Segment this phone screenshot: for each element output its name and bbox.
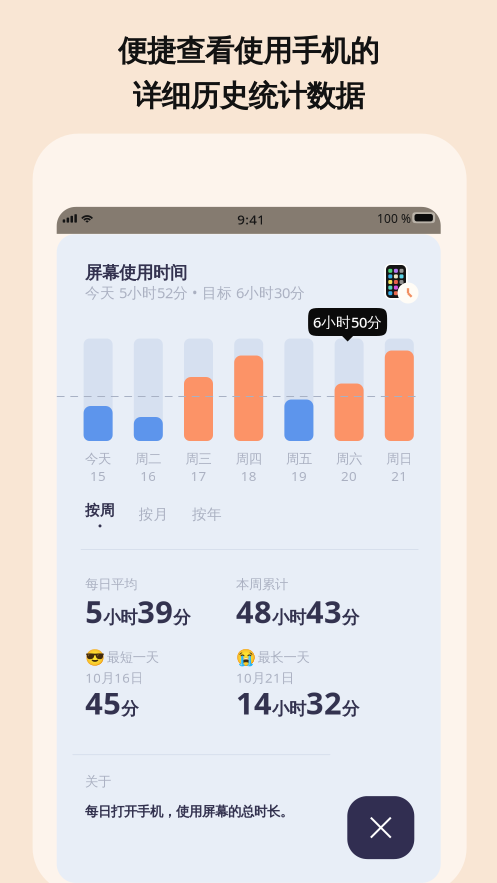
staticText: 按月 — [138, 505, 168, 523]
staticText: 32 — [306, 682, 342, 723]
staticText: 21 — [391, 467, 407, 485]
staticText: 10月16日 — [85, 669, 143, 686]
staticText: 周四 — [236, 450, 262, 467]
staticText: 便捷查看使用手机的 — [118, 33, 379, 69]
staticText: 最短一天 — [107, 649, 159, 665]
staticText: 关于 — [85, 773, 111, 790]
staticText: 周五 — [286, 450, 312, 467]
staticText: 😎 — [85, 648, 105, 666]
staticText: 最长一天 — [257, 649, 309, 665]
staticText: 10月21日 — [236, 669, 294, 686]
staticText: 周二 — [135, 450, 161, 467]
staticText: 周日 — [386, 450, 412, 467]
button[interactable]: 按周 — [85, 501, 138, 527]
staticText: 今天 — [85, 450, 111, 467]
button[interactable]: 按月 — [138, 505, 192, 523]
staticText: 每日平均 — [85, 576, 137, 593]
staticText: 周六 — [336, 450, 362, 467]
button[interactable]: 按年 — [192, 505, 245, 523]
staticText: 48 — [236, 591, 272, 632]
staticText: 每日打开手机，使用屏幕的总时长。 — [85, 803, 293, 820]
staticText: 今天 5小时52分 • 目标 6小时30分 — [85, 283, 305, 302]
staticText: 小时 — [272, 607, 306, 628]
staticText: 16 — [140, 467, 156, 485]
staticText: 本周累计 — [236, 576, 288, 593]
staticText: 14 — [236, 682, 272, 723]
staticText: 周三 — [185, 450, 211, 467]
staticText: 😭 — [236, 648, 256, 666]
staticText: 5 — [85, 591, 103, 632]
staticText: 屏幕使用时间 — [85, 262, 187, 283]
staticText: 分 — [342, 698, 359, 719]
staticText: 39 — [137, 591, 173, 632]
staticText: 6小时50分 — [313, 312, 382, 332]
staticText: 分 — [342, 607, 359, 628]
staticText: 100 % — [377, 210, 411, 226]
staticText: 小时 — [272, 698, 306, 719]
staticText: 分 — [173, 607, 190, 628]
staticText: 17 — [190, 467, 206, 485]
button[interactable]: Close — [347, 796, 414, 859]
staticText: 20 — [341, 467, 357, 485]
staticText: 18 — [241, 467, 257, 485]
staticText: 9:41 — [237, 210, 265, 228]
staticText: 43 — [306, 591, 342, 632]
staticText: 详细历史统计数据 — [132, 78, 364, 114]
staticText: 按年 — [192, 505, 222, 523]
staticText: 分 — [121, 698, 138, 719]
staticText: 小时 — [103, 607, 137, 628]
staticText: 按周 — [85, 501, 115, 519]
staticText: 45 — [85, 682, 121, 723]
staticText: 15 — [90, 467, 106, 485]
staticText: 19 — [291, 467, 307, 485]
